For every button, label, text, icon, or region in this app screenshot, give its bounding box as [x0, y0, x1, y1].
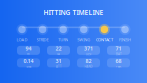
staticText: DIST [86, 52, 91, 56]
staticText: 22 [55, 45, 61, 52]
button[interactable]: SWING [73, 24, 94, 42]
staticText: BAT [116, 52, 121, 56]
button[interactable]: STRIDE [32, 24, 53, 42]
button[interactable]: 0.14 [17, 58, 40, 67]
staticText: PWR [115, 65, 121, 68]
staticText: TIME [26, 65, 31, 68]
staticText: STRIDE [37, 37, 49, 42]
button[interactable]: 68 [107, 58, 130, 67]
button[interactable]: 82 [77, 58, 100, 67]
staticText: 31 [55, 57, 61, 64]
staticText: 71 [115, 45, 121, 52]
staticText: EV [27, 52, 30, 56]
staticText: 94 [25, 45, 31, 52]
button[interactable]: 31 [47, 58, 70, 67]
staticText: ATT [56, 65, 61, 68]
staticText: TURN [58, 37, 68, 42]
button[interactable]: TURN [53, 24, 73, 42]
staticText: HITTING TIMELINE [43, 8, 103, 17]
staticText: LOAD [16, 37, 27, 42]
staticText: 0.14 [23, 57, 33, 64]
staticText: CONTACT [96, 37, 113, 42]
button[interactable]: 22 [47, 46, 70, 55]
staticText: FINISH [119, 37, 131, 42]
staticText: 371 [84, 45, 93, 52]
staticText: SWING [77, 37, 90, 42]
button[interactable]: 94 [17, 46, 40, 55]
button[interactable]: CONTACT [94, 24, 115, 42]
button[interactable]: FINISH [115, 24, 135, 42]
staticText: 82 [85, 57, 91, 64]
staticText: 68 [115, 57, 121, 64]
staticText: LA [57, 52, 60, 56]
staticText: HAND [84, 65, 92, 68]
button[interactable]: LOAD [12, 24, 32, 42]
button[interactable]: 71 [107, 46, 130, 55]
button[interactable]: 371 [77, 46, 100, 55]
